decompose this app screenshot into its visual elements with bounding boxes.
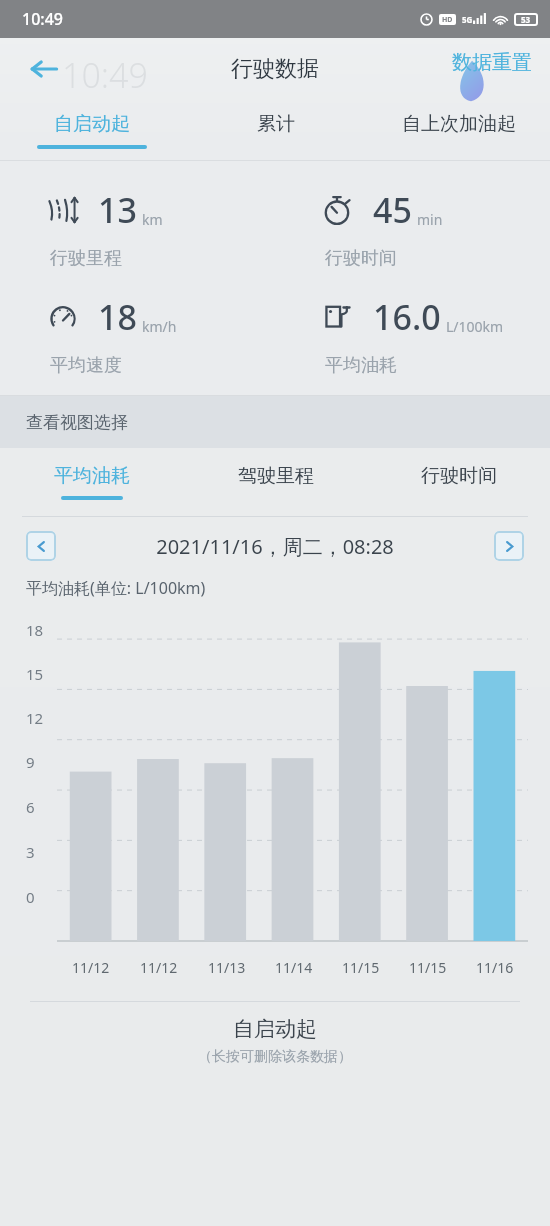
staticText: 2021/11/16，周二，08:28 (56, 533, 494, 560)
staticText: km/h (142, 317, 177, 336)
button[interactable]: Previous (26, 531, 56, 561)
staticText: 53 (521, 14, 531, 25)
staticText: 11/12 (140, 958, 178, 977)
button[interactable]: Next (494, 531, 524, 561)
staticText: HD (442, 15, 453, 25)
staticText: min (417, 210, 443, 229)
button[interactable]: Back (18, 43, 70, 95)
staticText: 11/13 (208, 958, 246, 977)
staticText: 18 (26, 620, 44, 640)
staticText: 行驶时间 (421, 464, 497, 488)
button[interactable]: 自上次加油起 (367, 100, 550, 160)
staticText: 10:49 (22, 8, 63, 30)
staticText: 累计 (257, 112, 295, 136)
staticText: 行驶数据 (231, 55, 319, 83)
staticText: 数据重置 (452, 50, 532, 75)
button[interactable]: 驾驶里程 (184, 448, 367, 516)
staticText: 13 (98, 187, 137, 233)
staticText: 11/16 (476, 958, 514, 977)
staticText: 行驶里程 (50, 247, 122, 270)
button[interactable]: 累计 (184, 100, 367, 160)
staticText: 平均油耗(单位: L/100km) (26, 577, 206, 599)
staticText: 查看视图选择 (26, 412, 128, 433)
staticText: 5G (462, 14, 473, 25)
staticText: 平均油耗 (325, 354, 397, 377)
staticText: 10:49 (62, 52, 148, 98)
staticText: 自启动起 (233, 1016, 317, 1042)
staticText: 平均速度 (50, 354, 122, 377)
staticText: 15 (26, 664, 44, 684)
staticText: 行驶时间 (325, 247, 397, 270)
staticText: 驾驶里程 (238, 464, 314, 488)
staticText: 0 (26, 887, 35, 907)
staticText: 3 (26, 842, 35, 862)
staticText: 11/15 (342, 958, 380, 977)
staticText: （长按可删除该条数据） (198, 1048, 352, 1066)
button[interactable]: 45 (275, 187, 550, 270)
button[interactable]: 行驶时间 (367, 448, 550, 516)
staticText: 自启动起 (54, 112, 130, 136)
button[interactable]: 数据重置 (448, 42, 536, 83)
staticText: 平均油耗 (54, 464, 130, 488)
button[interactable]: 平均油耗 (0, 448, 184, 516)
staticText: 11/14 (275, 958, 313, 977)
staticText: 11/15 (409, 958, 447, 977)
staticText: 45 (373, 187, 412, 233)
button[interactable]: 16.0 (275, 294, 550, 377)
button[interactable]: 自启动起 (0, 100, 184, 160)
staticText: 12 (26, 708, 44, 728)
staticText: 18 (98, 294, 137, 340)
staticText: 9 (26, 752, 35, 772)
staticText: 11/12 (72, 958, 110, 977)
staticText: km (142, 210, 163, 229)
staticText: 6 (26, 797, 35, 817)
staticText: 16.0 (373, 294, 441, 340)
button[interactable]: 13 (0, 187, 275, 270)
staticText: 自上次加油起 (402, 112, 516, 136)
button[interactable]: 18 (0, 294, 275, 377)
staticText: L/100km (446, 317, 504, 336)
